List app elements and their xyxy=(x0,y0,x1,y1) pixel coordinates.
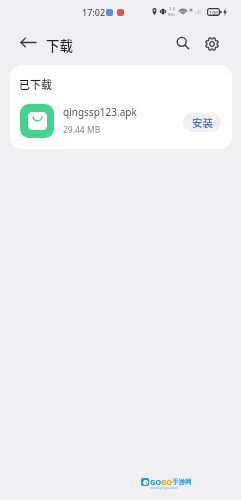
staticText: GO xyxy=(161,477,172,487)
staticText: M/s xyxy=(168,12,176,18)
button[interactable]: qingssp123.apk xyxy=(10,98,232,143)
staticText: www.gogo.com xyxy=(150,485,178,490)
staticText: 安装 xyxy=(192,115,213,130)
staticText: 17:02 xyxy=(82,6,106,18)
button[interactable]: 安装 xyxy=(183,113,221,132)
staticText: qingssp123.apk xyxy=(63,105,137,119)
staticText: 3.2 xyxy=(169,6,175,12)
staticText: 29.44 MB xyxy=(63,124,101,136)
staticText: 下载 xyxy=(46,35,73,55)
staticText: 已下载 xyxy=(19,76,52,92)
staticText: GO xyxy=(150,477,161,487)
button[interactable]: Search xyxy=(170,30,193,53)
button[interactable]: Back xyxy=(17,31,39,53)
button[interactable]: Settings xyxy=(200,32,224,56)
staticText: 100 xyxy=(209,9,219,16)
staticText: 手游网 xyxy=(172,478,192,486)
